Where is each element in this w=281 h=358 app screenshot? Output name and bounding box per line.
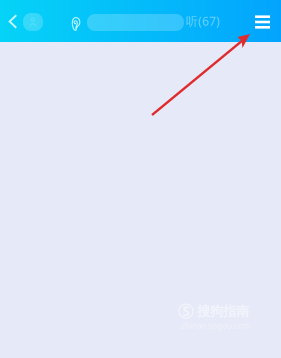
- staticText: S: [182, 302, 189, 320]
- button[interactable]: Listen: [67, 12, 85, 36]
- button[interactable]: Bookmarks: [186, 11, 220, 31]
- button[interactable]: Search: [87, 14, 184, 31]
- button[interactable]: Back: [2, 7, 24, 35]
- staticText: 搜狗指南: [197, 303, 249, 319]
- staticText: 听(67): [186, 13, 220, 29]
- button[interactable]: Menu: [250, 9, 275, 35]
- button[interactable]: Account: [23, 13, 43, 31]
